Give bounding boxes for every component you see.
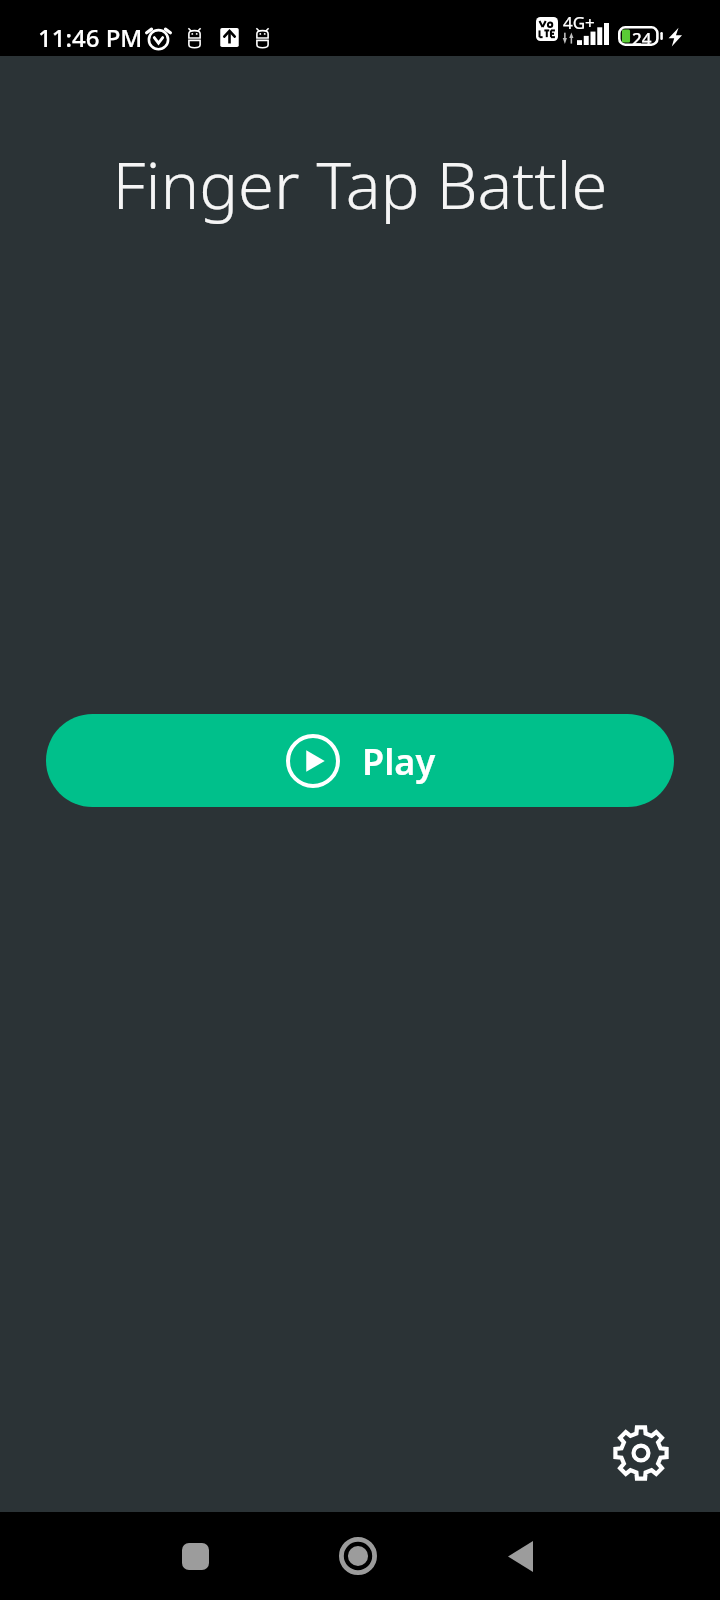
staticText: 24 xyxy=(632,27,652,50)
staticText: Play xyxy=(362,737,436,786)
staticText: 11:46 PM xyxy=(38,21,143,54)
button[interactable]: Recent apps xyxy=(155,1516,235,1596)
staticText: 4G+ xyxy=(563,11,595,34)
staticText: Finger Tap Battle xyxy=(0,140,720,229)
button[interactable]: Play xyxy=(46,714,674,807)
button[interactable]: Back xyxy=(480,1516,560,1596)
button[interactable]: Settings xyxy=(597,1409,685,1497)
button[interactable]: Home xyxy=(318,1516,398,1596)
